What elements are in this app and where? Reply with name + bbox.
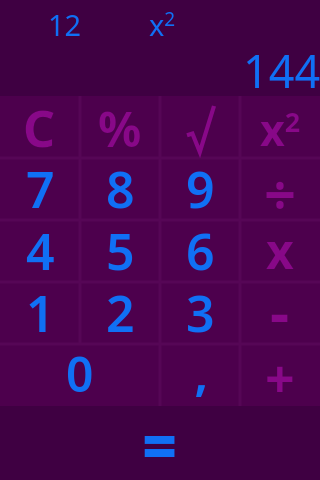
button[interactable]: 8 <box>80 158 160 220</box>
button[interactable]: divide <box>240 158 320 220</box>
staticText: x2 <box>149 5 176 44</box>
button[interactable]: equals <box>0 406 320 480</box>
staticText: 0 <box>66 341 94 403</box>
staticText: x2 <box>260 100 301 159</box>
staticText: = <box>142 404 178 478</box>
button[interactable]: 3 <box>160 282 240 344</box>
staticText: 3 <box>186 279 215 341</box>
button[interactable]: x squared <box>240 96 320 158</box>
staticText: x <box>266 218 294 280</box>
button[interactable]: 5 <box>80 220 160 282</box>
button[interactable]: 1 <box>0 282 80 344</box>
staticText: 12 <box>48 5 82 44</box>
button[interactable]: square root <box>160 96 240 158</box>
staticText: 2 <box>106 279 135 341</box>
staticText: 4 <box>26 217 55 279</box>
button[interactable]: C <box>0 96 80 158</box>
staticText: 6 <box>186 217 215 279</box>
staticText: 9 <box>186 155 215 217</box>
button[interactable]: 4 <box>0 220 80 282</box>
button[interactable]: multiply <box>240 220 320 282</box>
staticText: % <box>98 96 142 158</box>
button[interactable]: 7 <box>0 158 80 220</box>
button[interactable]: plus <box>240 344 320 406</box>
staticText: 144 <box>243 40 320 101</box>
button[interactable]: 0 <box>0 344 160 406</box>
button[interactable]: minus <box>240 282 320 344</box>
staticText: 5 <box>106 217 135 279</box>
button[interactable]: % <box>80 96 160 158</box>
button[interactable]: decimal separator <box>160 344 240 406</box>
staticText: 1 <box>26 279 55 341</box>
button[interactable]: 9 <box>160 158 240 220</box>
button[interactable]: 2 <box>80 282 160 344</box>
staticText: + <box>265 342 295 404</box>
button[interactable]: 6 <box>160 220 240 282</box>
staticText: 8 <box>106 155 135 217</box>
staticText: 7 <box>26 155 55 217</box>
staticText: ÷ <box>264 155 297 217</box>
staticText: - <box>270 270 290 332</box>
staticText: C <box>23 94 56 156</box>
staticText: , <box>194 335 209 397</box>
